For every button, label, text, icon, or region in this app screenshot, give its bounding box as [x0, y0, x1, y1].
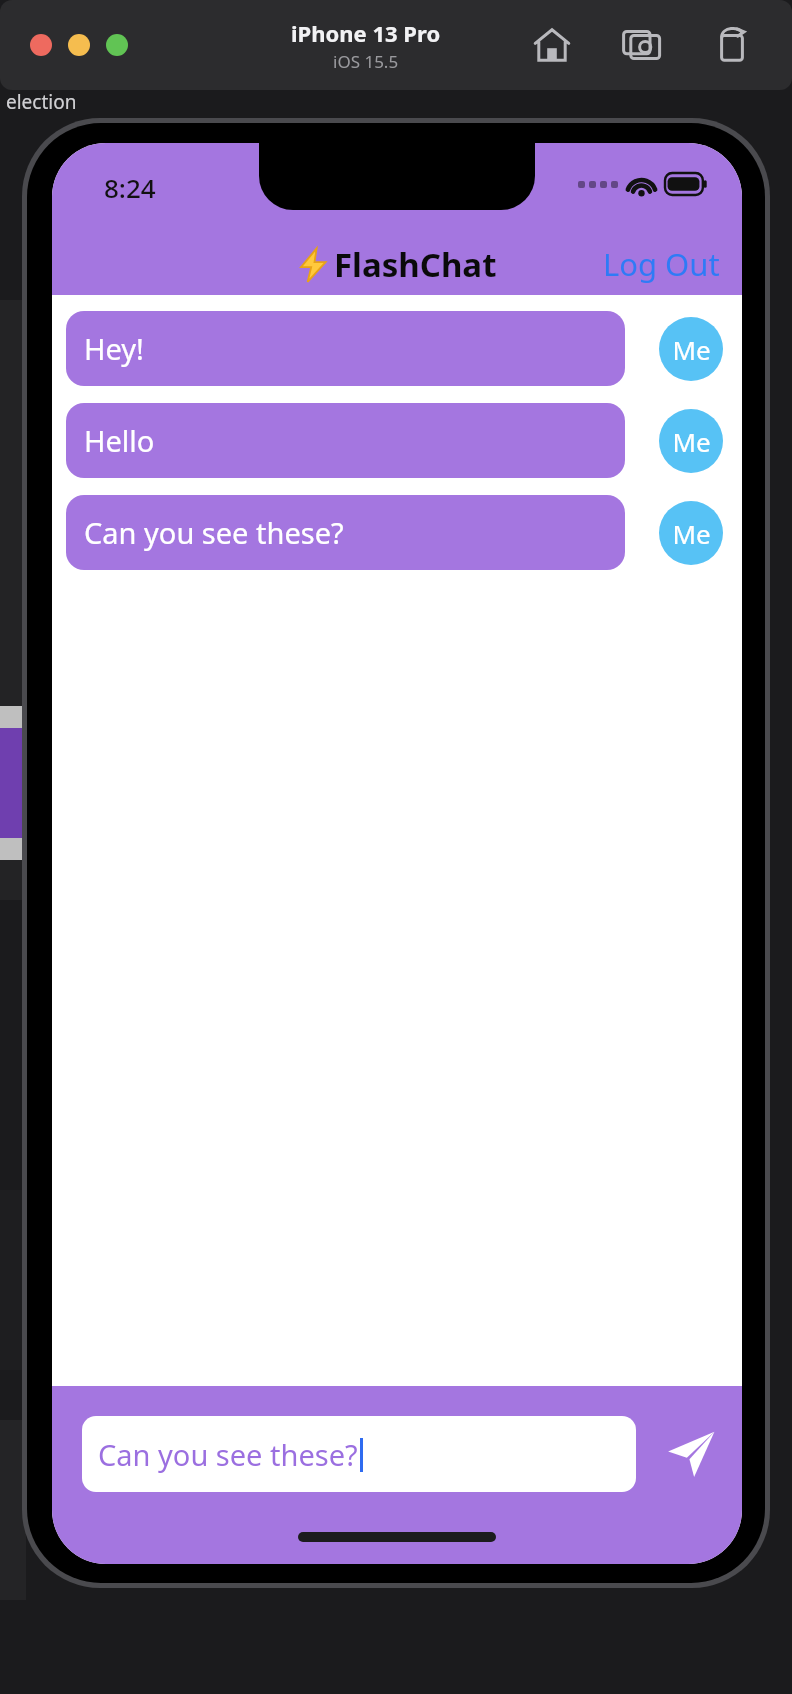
button[interactable]: Minimize — [68, 34, 90, 56]
button[interactable]: Hello — [66, 403, 723, 478]
button[interactable]: Can you see these? — [66, 495, 723, 570]
staticText: election — [6, 89, 77, 115]
button[interactable]: Hey! — [66, 311, 723, 386]
staticText: Me — [672, 424, 711, 459]
staticText: Me — [672, 516, 711, 551]
staticText: FlashChat — [334, 242, 497, 287]
button[interactable]: Screenshot — [622, 25, 662, 65]
staticText: iPhone 13 Pro — [291, 18, 441, 48]
staticText: 8:24 — [104, 170, 156, 205]
button[interactable]: Rotate — [712, 25, 752, 65]
staticText: Can you see these? — [84, 513, 344, 552]
button[interactable]: Send — [662, 1425, 720, 1483]
staticText: Me — [672, 332, 711, 367]
staticText: Hey! — [84, 329, 144, 368]
button[interactable]: Zoom — [106, 34, 128, 56]
button[interactable]: Home — [532, 25, 572, 65]
staticText: Log Out — [603, 243, 720, 285]
staticText: Hello — [84, 421, 155, 460]
staticText: iOS 15.5 — [333, 50, 399, 73]
button[interactable]: Close — [30, 34, 52, 56]
button[interactable]: Log Out — [599, 237, 724, 291]
button[interactable]: Can you see these? — [82, 1416, 636, 1492]
staticText: Can you see these? — [98, 1435, 358, 1474]
